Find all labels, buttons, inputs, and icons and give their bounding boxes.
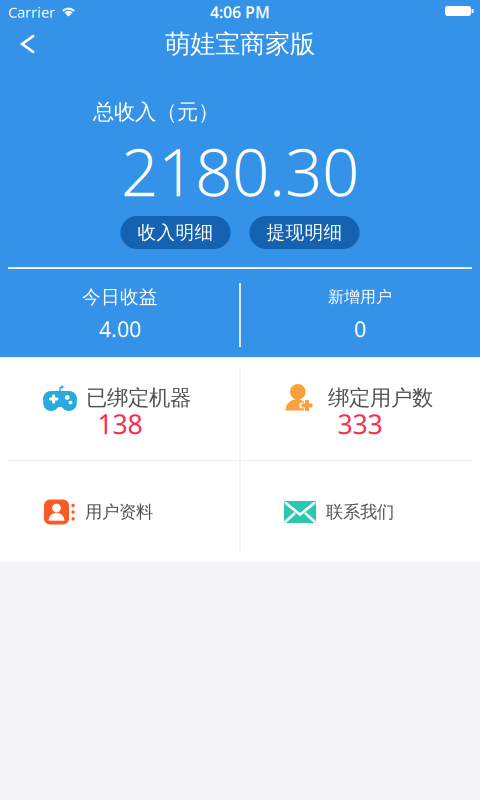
button[interactable]: 提现明细 xyxy=(249,216,359,249)
staticText: 已绑定机器 xyxy=(86,385,191,411)
staticText: 4:06 PM xyxy=(210,1,270,23)
staticText: 收入明细 xyxy=(137,221,213,244)
staticText: 138 xyxy=(97,406,142,442)
staticText: 0 xyxy=(354,315,366,343)
staticText: 联系我们 xyxy=(326,501,394,523)
staticText: 4.00 xyxy=(99,315,141,343)
staticText: 今日收益 xyxy=(82,285,158,308)
button[interactable]: 联系我们 xyxy=(240,460,480,562)
button[interactable]: 已绑定机器 xyxy=(0,357,240,460)
staticText: 提现明细 xyxy=(266,221,342,244)
staticText: 萌娃宝商家版 xyxy=(165,28,315,59)
staticText: Carrier xyxy=(8,2,55,22)
staticText: 新增用户 xyxy=(328,287,392,307)
button[interactable]: 绑定用户数 xyxy=(240,357,480,460)
staticText: 总收入（元） xyxy=(93,99,219,125)
button[interactable]: 收入明细 xyxy=(120,216,230,249)
staticText: 333 xyxy=(337,406,382,442)
staticText: 绑定用户数 xyxy=(328,385,433,411)
staticText: 用户资料 xyxy=(85,501,153,523)
button[interactable]: 用户资料 xyxy=(0,460,240,562)
staticText: 2180.30 xyxy=(121,128,359,214)
button[interactable]: Back xyxy=(0,25,46,62)
